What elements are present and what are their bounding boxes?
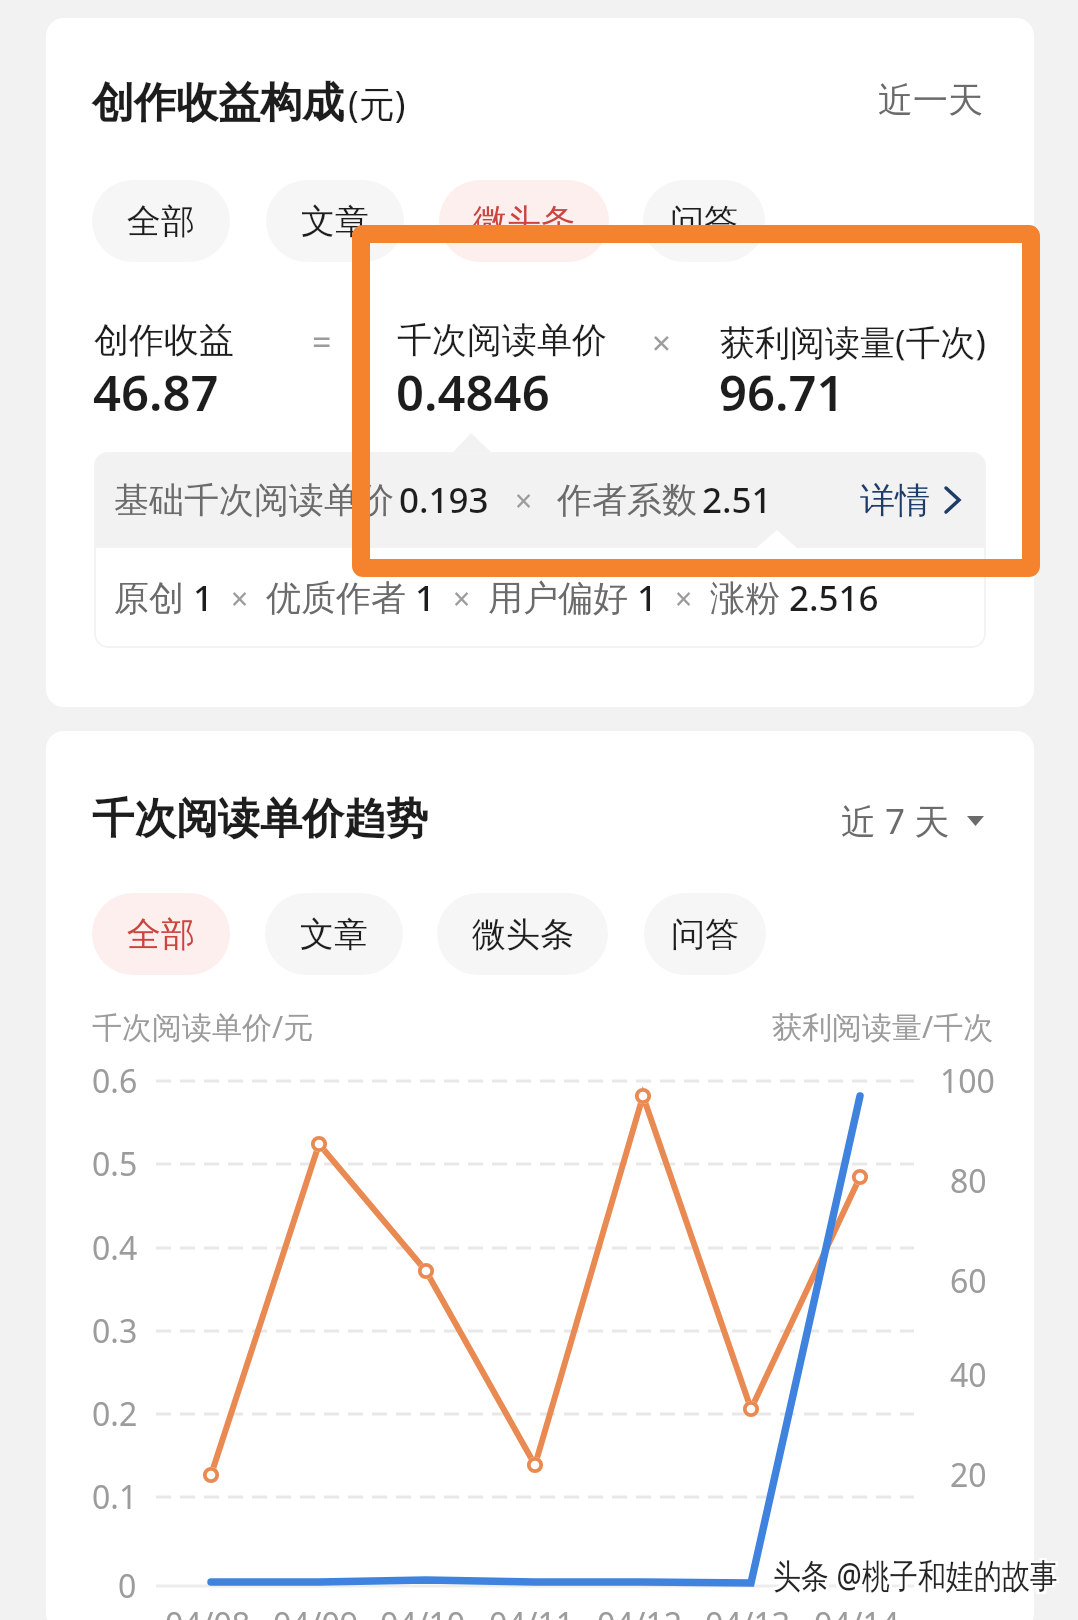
staticText: 详情: [860, 478, 930, 522]
button[interactable]: 文章: [266, 180, 404, 262]
staticText: 近 7 天: [841, 797, 950, 845]
staticText: 0.4: [92, 1226, 138, 1270]
staticText: 文章: [300, 913, 368, 956]
button[interactable]: [94, 452, 986, 548]
staticText: 头条 @桃子和娃的故事: [773, 1550, 1058, 1596]
staticText: 40: [950, 1353, 987, 1397]
staticText: 04/08: [165, 1602, 251, 1620]
staticText: 96.71: [719, 359, 845, 426]
staticText: 创作收益构成: [92, 77, 344, 130]
other: Select range: [966, 814, 985, 828]
staticText: 头条 @桃子和娃的故事: [773, 1552, 1058, 1598]
button[interactable]: 近一天: [878, 78, 983, 122]
staticText: 1: [193, 574, 214, 622]
staticText: 04/09: [273, 1602, 359, 1620]
staticText: (元): [348, 79, 406, 128]
staticText: ×: [515, 480, 533, 521]
staticText: 0.4846: [396, 359, 550, 426]
staticText: 60: [950, 1259, 987, 1303]
button[interactable]: 全部: [92, 180, 230, 262]
staticText: 作者系数: [557, 478, 697, 522]
button[interactable]: 近 7 天: [841, 797, 985, 845]
staticText: 0.2: [92, 1392, 138, 1436]
staticText: 全部: [127, 913, 195, 956]
staticText: 千次阅读单价趋势: [92, 793, 428, 846]
staticText: 2.516: [789, 574, 879, 622]
button[interactable]: 微头条: [437, 893, 608, 975]
staticText: 微头条: [472, 913, 574, 956]
staticText: 用户偏好: [488, 576, 628, 620]
staticText: 问答: [670, 200, 738, 243]
staticText: 千次阅读单价/元: [92, 1006, 314, 1047]
staticText: ×: [652, 320, 671, 365]
staticText: 创作收益: [94, 318, 234, 362]
staticText: 2.51: [702, 476, 772, 524]
staticText: 优质作者: [266, 576, 406, 620]
staticText: 头条 @桃子和娃的故事: [770, 1554, 1056, 1600]
staticText: ×: [453, 578, 471, 619]
staticText: 04/11: [489, 1602, 575, 1620]
staticText: 获利阅读量(千次): [720, 318, 987, 366]
staticText: ×: [675, 578, 693, 619]
staticText: 头条 @桃子和娃的故事: [770, 1552, 1056, 1598]
staticText: 文章: [301, 200, 369, 243]
staticText: ×: [231, 578, 249, 619]
staticText: 头条 @桃子和娃的故事: [775, 1554, 1061, 1600]
staticText: 04/10: [380, 1602, 466, 1620]
staticText: 1: [415, 574, 436, 622]
button[interactable]: 详情: [860, 452, 962, 548]
staticText: 0.6: [92, 1059, 138, 1103]
staticText: 1: [637, 574, 658, 622]
staticText: 基础千次阅读单价: [114, 478, 394, 522]
staticText: 0.193: [399, 476, 489, 524]
button[interactable]: 问答: [643, 180, 765, 262]
staticText: 问答: [671, 913, 739, 956]
button[interactable]: 全部: [92, 893, 230, 975]
staticText: 0.5: [92, 1142, 138, 1186]
staticText: 46.87: [93, 359, 219, 426]
staticText: 涨粉: [710, 576, 780, 620]
staticText: 100: [940, 1059, 995, 1103]
staticText: 头条 @桃子和娃的故事: [770, 1550, 1056, 1596]
staticText: =: [312, 319, 332, 365]
staticText: 头条 @桃子和娃的故事: [775, 1550, 1061, 1596]
button[interactable]: 文章: [265, 893, 403, 975]
staticText: 头条 @桃子和娃的故事: [773, 1554, 1058, 1600]
staticText: 04/14: [814, 1602, 900, 1620]
staticText: 原创: [114, 576, 184, 620]
staticText: 头条 @桃子和娃的故事: [775, 1552, 1061, 1598]
staticText: 0: [118, 1564, 137, 1608]
button[interactable]: 问答: [644, 893, 766, 975]
staticText: 20: [950, 1453, 987, 1497]
staticText: 0.3: [92, 1309, 138, 1353]
button[interactable]: 微头条: [439, 180, 609, 262]
staticText: 获利阅读量/千次: [772, 1006, 994, 1047]
staticText: 全部: [127, 200, 195, 243]
staticText: 80: [950, 1159, 987, 1203]
staticText: 微头条: [473, 200, 575, 243]
staticText: 0.1: [92, 1475, 138, 1519]
staticText: 04/13: [705, 1602, 791, 1620]
staticText: 04/12: [597, 1602, 683, 1620]
staticText: 千次阅读单价: [397, 318, 607, 362]
